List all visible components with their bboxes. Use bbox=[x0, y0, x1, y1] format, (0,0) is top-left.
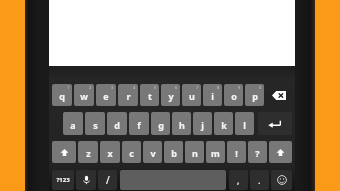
button[interactable]: 6 bbox=[161, 84, 180, 106]
staticText: u bbox=[189, 90, 195, 102]
button[interactable]: b bbox=[164, 141, 183, 163]
staticText: 5 bbox=[154, 85, 157, 90]
staticText: . bbox=[258, 174, 261, 186]
staticText: d bbox=[114, 119, 120, 131]
staticText: 8 bbox=[217, 85, 220, 90]
staticText: g bbox=[158, 119, 164, 131]
button[interactable]: Emoji bbox=[271, 170, 292, 190]
button[interactable]: ? bbox=[248, 141, 267, 163]
button[interactable]: Shift bbox=[269, 141, 292, 163]
button[interactable]: Voice input bbox=[76, 170, 96, 190]
button[interactable]: 3 bbox=[96, 84, 116, 106]
staticText: i bbox=[211, 90, 214, 102]
button[interactable]: 9 bbox=[224, 84, 243, 106]
staticText: k bbox=[221, 119, 227, 131]
button[interactable]: Backspace bbox=[265, 84, 293, 106]
staticText: o bbox=[231, 90, 237, 102]
staticText: y bbox=[168, 90, 174, 102]
staticText: h bbox=[179, 119, 185, 131]
button[interactable]: / bbox=[98, 170, 117, 190]
button[interactable]: 1 bbox=[52, 84, 72, 106]
button[interactable]: . bbox=[250, 170, 269, 190]
staticText: 2 bbox=[89, 85, 92, 90]
staticText: 9 bbox=[238, 85, 241, 90]
staticText: ? bbox=[255, 147, 260, 159]
button[interactable]: j bbox=[193, 112, 212, 135]
staticText: j bbox=[201, 119, 204, 131]
staticText: s bbox=[93, 119, 98, 131]
staticText: 6 bbox=[175, 85, 178, 90]
button[interactable]: 5 bbox=[140, 84, 159, 106]
staticText: n bbox=[192, 147, 198, 159]
button[interactable]: , bbox=[229, 170, 248, 190]
button[interactable]: v bbox=[143, 141, 162, 163]
button[interactable]: x bbox=[100, 141, 120, 163]
staticText: m bbox=[211, 147, 220, 159]
staticText: p bbox=[252, 90, 258, 102]
button[interactable]: z bbox=[78, 141, 98, 163]
staticText: 3 bbox=[111, 85, 114, 90]
button[interactable]: 4 bbox=[118, 84, 138, 106]
button[interactable]: 2 bbox=[74, 84, 94, 106]
button[interactable]: k bbox=[214, 112, 233, 135]
button[interactable]: Enter bbox=[258, 112, 292, 135]
button[interactable]: d bbox=[107, 112, 127, 135]
button[interactable]: f bbox=[129, 112, 149, 135]
button[interactable]: m bbox=[206, 141, 225, 163]
button[interactable]: a bbox=[63, 112, 83, 135]
staticText: v bbox=[150, 147, 156, 159]
button[interactable]: n bbox=[185, 141, 204, 163]
staticText: a bbox=[70, 119, 76, 131]
button[interactable]: c bbox=[122, 141, 141, 163]
staticText: r bbox=[126, 90, 131, 102]
staticText: e bbox=[103, 90, 109, 102]
button[interactable]: h bbox=[172, 112, 191, 135]
staticText: / bbox=[106, 173, 110, 187]
staticText: 7 bbox=[196, 85, 199, 90]
staticText: x bbox=[107, 147, 113, 159]
button[interactable]: l bbox=[235, 112, 254, 135]
button[interactable]: ?123 bbox=[52, 170, 74, 190]
button[interactable]: s bbox=[85, 112, 105, 135]
staticText: , bbox=[237, 174, 240, 186]
staticText: ! bbox=[235, 147, 238, 159]
staticText: f bbox=[137, 119, 141, 131]
staticText: ?123 bbox=[56, 176, 70, 184]
staticText: q bbox=[59, 90, 65, 102]
staticText: 1 bbox=[67, 85, 70, 90]
button[interactable]: 7 bbox=[182, 84, 201, 106]
staticText: b bbox=[171, 147, 177, 159]
button[interactable]: Shift bbox=[52, 141, 76, 163]
button[interactable]: g bbox=[151, 112, 170, 135]
staticText: w bbox=[80, 90, 88, 102]
staticText: 4 bbox=[133, 85, 136, 90]
button[interactable]: 8 bbox=[203, 84, 222, 106]
staticText: z bbox=[86, 147, 91, 159]
button[interactable]: ! bbox=[227, 141, 246, 163]
button[interactable]: 0 bbox=[245, 84, 264, 106]
staticText: 0 bbox=[259, 85, 262, 90]
staticText: c bbox=[129, 147, 134, 159]
staticText: l bbox=[243, 119, 246, 131]
staticText: t bbox=[148, 90, 152, 102]
